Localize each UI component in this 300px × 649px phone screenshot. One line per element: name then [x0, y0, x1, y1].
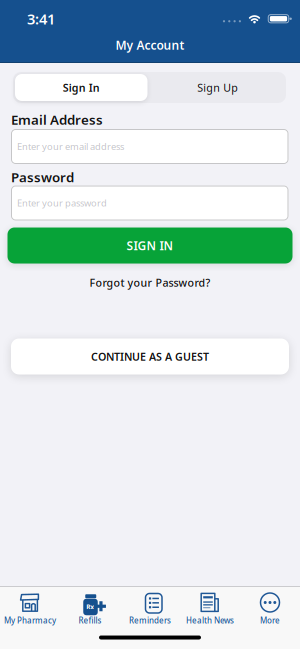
staticText: My Pharmacy — [4, 615, 56, 626]
staticText: Rx — [86, 602, 94, 611]
staticText: SIGN IN — [126, 237, 173, 253]
staticText: Refills — [78, 615, 101, 626]
staticText: Email Address — [11, 111, 103, 128]
staticText: My Account — [115, 37, 184, 53]
button[interactable]: Reminders — [120, 592, 180, 626]
staticText: Enter your email address — [17, 140, 124, 153]
button[interactable]: Health News — [180, 592, 240, 626]
staticText: Password — [11, 168, 74, 186]
button[interactable]: SIGN IN — [7, 227, 292, 263]
staticText: 3:41 — [27, 9, 55, 28]
button[interactable]: Sign Up — [151, 74, 284, 101]
staticText: Forgot your Password? — [89, 275, 210, 290]
button[interactable]: Email Address — [11, 129, 288, 164]
staticText: CONTINUE AS A GUEST — [91, 349, 209, 364]
staticText: Sign Up — [197, 80, 238, 95]
button[interactable]: My Pharmacy — [0, 592, 60, 626]
staticText: Health News — [186, 615, 234, 626]
button[interactable]: Sign In — [15, 74, 147, 101]
staticText: Reminders — [129, 615, 171, 626]
staticText: More — [260, 615, 280, 626]
button[interactable]: Rx — [60, 592, 120, 626]
staticText: Sign In — [63, 80, 100, 95]
button[interactable]: CONTINUE AS A GUEST — [11, 338, 289, 374]
staticText: Enter your password — [17, 197, 107, 209]
button[interactable]: More — [240, 592, 300, 626]
button[interactable]: Password — [11, 185, 288, 220]
button[interactable]: Forgot your Password? — [89, 275, 210, 290]
